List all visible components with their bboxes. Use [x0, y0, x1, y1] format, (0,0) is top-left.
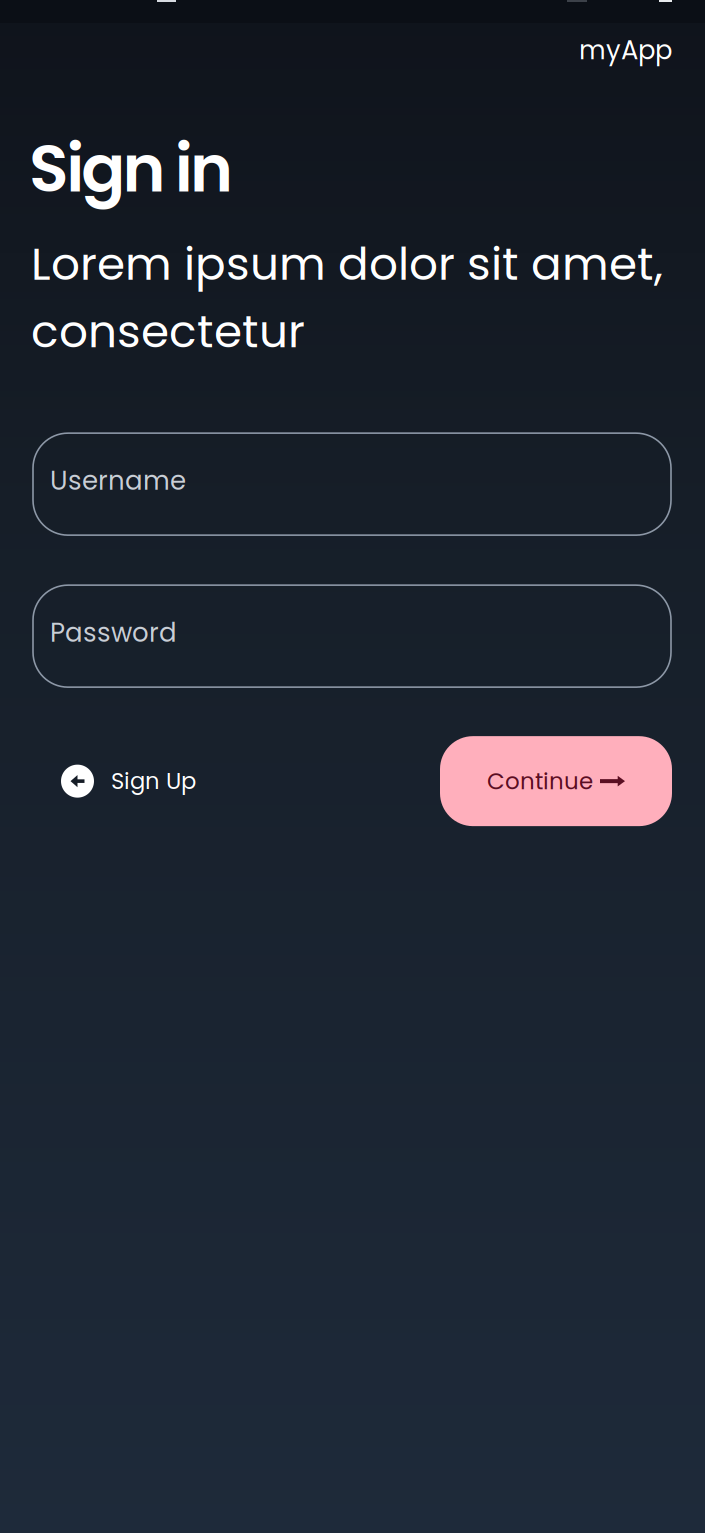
staticText: myApp — [579, 32, 672, 68]
staticText: Username — [50, 462, 186, 499]
staticText: Sign Up — [111, 765, 196, 797]
button[interactable]: Sign Up — [61, 765, 196, 798]
staticText: Sign in — [29, 123, 233, 214]
staticText: Lorem ipsum dolor sit amet, consectetur — [31, 232, 663, 363]
button[interactable]: Continue — [440, 736, 672, 826]
staticText: Continue — [487, 765, 593, 797]
staticText: Password — [50, 614, 177, 651]
button[interactable]: myApp — [579, 32, 672, 68]
